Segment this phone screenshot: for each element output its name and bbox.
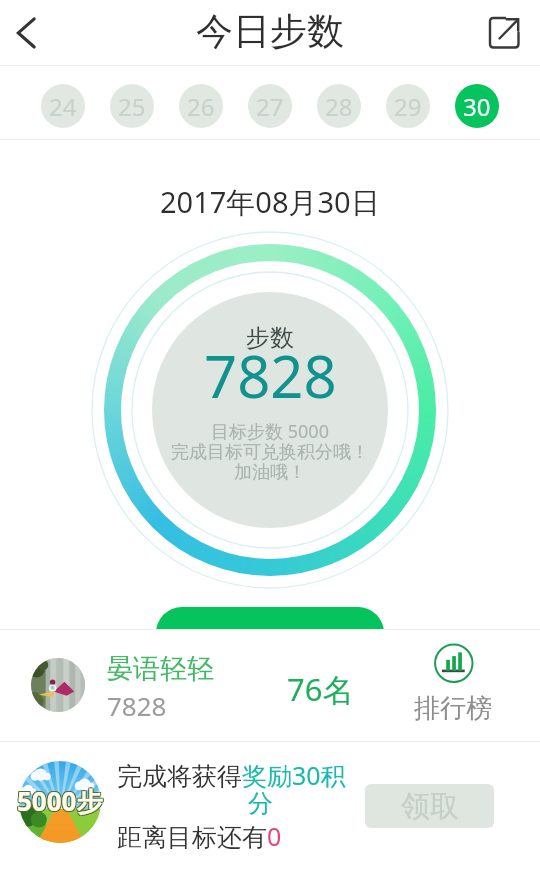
button[interactable]: 27 — [248, 84, 292, 128]
button[interactable]: 25 — [110, 84, 154, 128]
button[interactable]: 24 — [41, 84, 85, 128]
staticText: 30 — [463, 90, 491, 123]
staticText: 目标步数 5000 完成目标可兑换积分哦！ 加油哦！ — [171, 419, 369, 484]
staticText: 29 — [394, 90, 422, 123]
button[interactable]: 30 — [455, 84, 499, 128]
staticText: 25 — [118, 90, 146, 123]
staticText: 完成将获得奖励30积 — [117, 758, 346, 792]
staticText: 5000步 — [18, 783, 104, 819]
staticText: 7828 — [107, 688, 167, 723]
staticText: 5000步 — [18, 784, 104, 820]
staticText: 5000步 — [16, 784, 102, 820]
staticText: 5000步 — [17, 784, 103, 820]
button[interactable]: 29 — [386, 84, 430, 128]
button[interactable]: 领取 — [365, 784, 494, 828]
staticText: 7828 — [204, 336, 337, 415]
staticText: 5000步 — [17, 783, 103, 819]
button[interactable]: 28 — [317, 84, 361, 128]
staticText: 2017年08月30日 — [160, 182, 380, 222]
staticText: 排行榜 — [414, 692, 492, 725]
staticText: 76名 — [287, 668, 354, 710]
button[interactable]: 晏语轻轻 — [0, 630, 540, 741]
staticText: 24 — [49, 90, 77, 123]
staticText: 分 — [248, 788, 273, 819]
button[interactable]: Share — [476, 0, 540, 65]
button[interactable] — [156, 607, 384, 629]
staticText: 28 — [325, 90, 353, 123]
staticText: 晏语轻轻 — [106, 652, 214, 686]
button[interactable]: 26 — [179, 84, 223, 128]
staticText: 5000步 — [16, 782, 102, 818]
staticText: 今日步数 — [196, 8, 344, 55]
staticText: 5000步 — [18, 782, 104, 818]
staticText: 领取 — [401, 788, 459, 825]
staticText: 5000步 — [17, 782, 103, 818]
staticText: 距离目标还有0 — [117, 819, 282, 853]
staticText: 26 — [187, 90, 215, 123]
staticText: 5000步 — [16, 783, 102, 819]
staticText: 步数 — [246, 323, 294, 353]
staticText: 27 — [256, 90, 284, 123]
button[interactable]: Back — [0, 0, 56, 65]
